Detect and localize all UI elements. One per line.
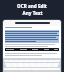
button[interactable]: Keyboard key	[23, 63, 29, 65]
button[interactable]: Keyboard key	[9, 60, 14, 62]
button[interactable]: Keyboard key	[41, 63, 47, 65]
button[interactable]: Keyboard key	[24, 65, 30, 67]
button[interactable]: Keyboard key	[48, 60, 54, 62]
button[interactable]: Keyboard key	[42, 60, 48, 62]
staticText: OCR and Edit	[17, 3, 47, 9]
button[interactable]: Keyboard key	[18, 65, 24, 67]
button[interactable]: Keyboard key	[53, 63, 59, 65]
button[interactable]: Keyboard key	[14, 60, 19, 62]
button[interactable]: Keyboard key	[12, 65, 18, 67]
button[interactable]: Keyboard key	[35, 63, 41, 65]
button[interactable]: Keyboard key	[29, 63, 35, 65]
button[interactable]: Keyboard key	[17, 63, 23, 65]
button[interactable]: Keyboard key	[5, 63, 11, 65]
button[interactable]: Keyboard key	[6, 65, 12, 67]
button[interactable]: Keyboard key	[54, 60, 60, 62]
button[interactable]: Keyboard key	[4, 60, 9, 62]
button[interactable]: Selected text	[5, 30, 59, 43]
button[interactable]: Keyboard key	[11, 63, 17, 65]
button[interactable]: Copy, share, select all menu	[5, 48, 59, 51]
button[interactable]: Keyboard key	[30, 60, 36, 62]
button[interactable]: Keyboard key	[44, 65, 51, 67]
button[interactable]: Keyboard key	[51, 65, 58, 67]
button[interactable]: Address bar	[15, 22, 50, 24]
button[interactable]: Keyboard key	[47, 63, 53, 65]
button[interactable]: Keyboard key	[24, 60, 30, 62]
button[interactable]: Keyboard key	[30, 65, 37, 67]
button[interactable]: Keyboard key	[36, 60, 42, 62]
button[interactable]: Keyboard key	[37, 65, 44, 67]
button[interactable]: Keyboard key	[19, 60, 24, 62]
staticText: Any Text	[22, 10, 43, 16]
